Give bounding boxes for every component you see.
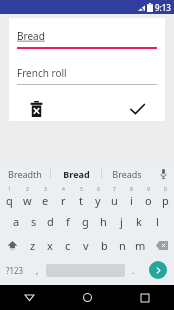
- button[interactable]: Voice input: [152, 164, 174, 183]
- staticText: Breads: [112, 168, 142, 180]
- staticText: q: [6, 193, 13, 208]
- button[interactable]: g: [76, 209, 94, 233]
- staticText: i: [130, 193, 133, 208]
- staticText: Bread: [63, 168, 90, 180]
- button[interactable]: Delete: [24, 97, 48, 121]
- staticText: b: [101, 238, 108, 253]
- staticText: z: [30, 238, 36, 253]
- button[interactable]: Confirm: [125, 97, 149, 121]
- button[interactable]: French roll: [17, 66, 157, 85]
- button[interactable]: Breadth: [0, 164, 50, 183]
- staticText: 3: [44, 186, 47, 193]
- button[interactable]: s: [25, 209, 42, 233]
- staticText: 5: [80, 186, 83, 193]
- button[interactable]: 5: [72, 185, 89, 209]
- staticText: ,: [36, 264, 39, 276]
- staticText: 4: [62, 186, 65, 193]
- staticText: 7: [113, 186, 116, 193]
- button[interactable]: 2: [18, 185, 36, 209]
- staticText: j: [120, 214, 123, 229]
- staticText: e: [42, 193, 49, 208]
- staticText: 2: [26, 186, 29, 193]
- button[interactable]: n: [113, 233, 131, 257]
- staticText: 0: [164, 186, 167, 193]
- button[interactable]: d: [42, 209, 59, 233]
- button[interactable]: 3: [36, 185, 54, 209]
- staticText: 9:13: [155, 2, 171, 13]
- button[interactable]: 1: [0, 185, 18, 209]
- button[interactable]: 7: [106, 185, 123, 209]
- button[interactable]: j: [112, 209, 130, 233]
- staticText: x: [47, 238, 53, 253]
- button[interactable]: Breads: [102, 164, 152, 183]
- button[interactable]: Bread: [17, 29, 157, 49]
- staticText: .: [132, 264, 135, 276]
- button[interactable]: h: [94, 209, 112, 233]
- staticText: French roll: [17, 66, 67, 80]
- staticText: c: [65, 238, 71, 253]
- staticText: t: [79, 193, 83, 208]
- staticText: w: [23, 193, 32, 208]
- staticText: m: [135, 238, 146, 253]
- staticText: y: [95, 193, 101, 208]
- button[interactable]: l: [148, 209, 166, 233]
- button[interactable]: 4: [54, 185, 72, 209]
- staticText: d: [47, 214, 54, 229]
- button[interactable]: Back: [0, 285, 58, 310]
- button[interactable]: ?123: [0, 257, 29, 283]
- button[interactable]: Backspace: [149, 233, 174, 257]
- button[interactable]: x: [41, 233, 59, 257]
- button[interactable]: 9: [140, 185, 157, 209]
- button[interactable]: 6: [89, 185, 106, 209]
- staticText: g: [82, 214, 89, 229]
- staticText: Breadth: [8, 168, 42, 180]
- button[interactable]: m: [131, 233, 149, 257]
- staticText: p: [162, 193, 169, 208]
- staticText: 9: [147, 186, 150, 193]
- button[interactable]: z: [24, 233, 41, 257]
- button[interactable]: a: [8, 209, 25, 233]
- staticText: f: [66, 214, 70, 229]
- button[interactable]: v: [77, 233, 95, 257]
- staticText: Bread: [17, 29, 45, 43]
- button[interactable]: 8: [123, 185, 140, 209]
- button[interactable]: Recent apps: [116, 285, 174, 310]
- staticText: v: [83, 238, 89, 253]
- staticText: k: [136, 214, 142, 229]
- staticText: r: [61, 193, 66, 208]
- staticText: a: [13, 214, 20, 229]
- staticText: s: [31, 214, 37, 229]
- button[interactable]: b: [95, 233, 113, 257]
- staticText: l: [156, 214, 159, 229]
- button[interactable]: Shift: [0, 233, 24, 257]
- staticText: 1: [8, 186, 11, 193]
- staticText: n: [119, 238, 126, 253]
- button[interactable]: Bread: [51, 164, 101, 183]
- button[interactable]: .: [125, 257, 142, 283]
- staticText: u: [111, 193, 118, 208]
- button[interactable]: c: [59, 233, 77, 257]
- staticText: ?123: [6, 265, 24, 276]
- staticText: h: [100, 214, 107, 229]
- staticText: 6: [97, 186, 100, 193]
- button[interactable]: Home: [58, 285, 116, 310]
- button[interactable]: f: [59, 209, 76, 233]
- button[interactable]: Next: [149, 261, 167, 279]
- button[interactable]: 0: [157, 185, 174, 209]
- staticText: 8: [130, 186, 133, 193]
- button[interactable]: ,: [29, 257, 46, 283]
- button[interactable]: k: [130, 209, 148, 233]
- staticText: o: [145, 193, 152, 208]
